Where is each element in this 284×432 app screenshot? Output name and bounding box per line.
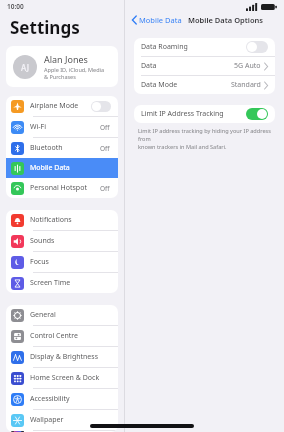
staticText: AJ (21, 62, 29, 73)
button[interactable]: Bluetooth (6, 138, 118, 158)
button[interactable]: Display & Brightness (6, 347, 118, 367)
button[interactable]: Accessibility (6, 389, 118, 409)
button[interactable]: Control Centre (6, 326, 118, 346)
staticText: Off (100, 144, 110, 153)
staticText: Notifications (30, 215, 72, 225)
button[interactable]: AJ (6, 46, 118, 87)
button[interactable]: Wi-Fi (6, 117, 118, 137)
staticText: Alan Jones (44, 53, 88, 65)
staticText: Apple ID, iCloud, Media (44, 66, 105, 73)
button[interactable]: Toggle off (246, 41, 268, 53)
staticText: Limit IP Address Tracking (141, 109, 224, 119)
staticText: Control Centre (30, 331, 79, 341)
button[interactable]: Data Mode (134, 76, 275, 94)
staticText: Off (100, 184, 110, 193)
button[interactable]: Data (134, 57, 275, 75)
button[interactable]: Toggle off (91, 101, 111, 112)
button[interactable]: Home Screen & Dock (6, 368, 118, 388)
staticText: Sounds (30, 236, 55, 246)
staticText: Wi-Fi (30, 122, 47, 132)
staticText: Mobile Data (139, 15, 182, 25)
staticText: Home Screen & Dock (30, 373, 100, 383)
button[interactable]: Data Roaming (134, 38, 275, 56)
staticText: & Purchases (44, 73, 76, 80)
staticText: Data (141, 61, 157, 71)
staticText: 5G Auto (234, 61, 261, 71)
staticText: Accessibility (30, 394, 70, 404)
staticText: Airplane Mode (30, 101, 79, 111)
staticText: 10:00 (7, 2, 24, 11)
button[interactable]: Limit IP Address Tracking (134, 105, 275, 123)
staticText: Settings (10, 16, 80, 39)
staticText: Wallpaper (30, 415, 64, 425)
staticText: Mobile Data Options (188, 15, 264, 25)
button[interactable]: Wallpaper (6, 410, 118, 430)
staticText: General (30, 310, 56, 320)
button[interactable]: Toggle on (246, 108, 268, 120)
staticText: Off (100, 123, 110, 132)
button[interactable]: Mobile Data (6, 158, 118, 178)
button[interactable]: Sounds (6, 231, 118, 251)
staticText: Standard (231, 80, 261, 90)
button[interactable]: Back to Mobile Data (130, 15, 184, 25)
button[interactable]: Screen Time (6, 273, 118, 293)
staticText: Screen Time (30, 278, 71, 288)
staticText: known trackers in Mail and Safari. (138, 143, 227, 151)
staticText: Limit IP address tracking by hiding your… (138, 127, 271, 143)
button[interactable]: General (6, 305, 118, 325)
button[interactable]: Airplane Mode (6, 96, 118, 116)
staticText: Bluetooth (30, 143, 63, 153)
staticText: Mobile Data (30, 163, 70, 173)
button[interactable]: Siri & Search (6, 431, 118, 432)
staticText: Display & Brightness (30, 352, 99, 362)
staticText: Personal Hotspot (30, 183, 87, 193)
other: Back to Mobile Data (132, 16, 137, 24)
button[interactable]: Focus (6, 252, 118, 272)
button[interactable]: Personal Hotspot (6, 178, 118, 198)
staticText: Focus (30, 257, 49, 267)
button[interactable]: Notifications (6, 210, 118, 230)
staticText: Data Roaming (141, 42, 188, 52)
staticText: Data Mode (141, 80, 178, 90)
